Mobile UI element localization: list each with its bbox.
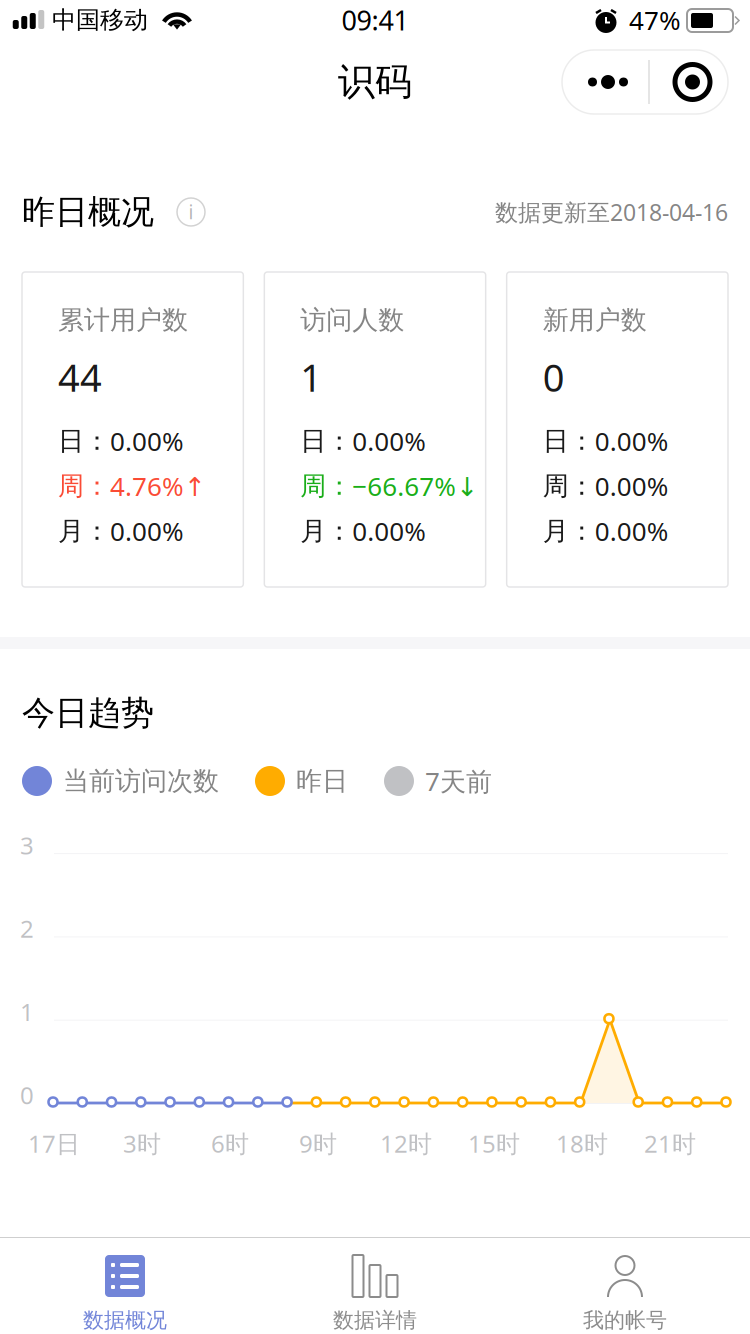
staticText: 数据概况 <box>83 1307 167 1333</box>
staticText: 3时 <box>123 1127 161 1160</box>
staticText: 7天前 <box>425 763 492 799</box>
staticText: 0 <box>20 1079 34 1111</box>
staticText: 0.00% <box>110 423 184 459</box>
staticText: 0.00% <box>595 468 669 504</box>
staticText: 0.00% <box>595 513 669 549</box>
staticText: 周： <box>543 470 595 502</box>
staticText: 9时 <box>299 1127 337 1160</box>
staticText: 月： <box>543 515 595 547</box>
staticText: 0.00% <box>110 513 184 549</box>
staticText: 09:41 <box>341 2 408 38</box>
staticText: 新用户数 <box>543 304 647 336</box>
staticText: 12时 <box>380 1127 432 1160</box>
staticText: 4.76%↑ <box>110 468 206 504</box>
staticText: 15时 <box>468 1127 520 1160</box>
staticText: 日： <box>300 425 352 457</box>
staticText: 1 <box>20 995 34 1028</box>
staticText: 0.00% <box>352 423 426 459</box>
staticText: 18时 <box>556 1127 608 1160</box>
staticText: 识码 <box>338 59 412 105</box>
staticText: 累计用户数 <box>58 304 188 336</box>
staticText: 数据更新至2018-04-16 <box>495 196 728 228</box>
staticText: 17日 <box>28 1127 80 1160</box>
staticText: 周： <box>300 470 352 502</box>
staticText: 日： <box>543 425 595 457</box>
staticText: 访问人数 <box>300 304 404 336</box>
button[interactable]: 说明 <box>165 186 217 238</box>
staticText: 21时 <box>644 1127 696 1160</box>
button[interactable]: 更多 <box>562 50 728 114</box>
staticText: 昨日 <box>296 765 348 797</box>
staticText: 周： <box>58 470 110 502</box>
staticText: 3 <box>20 829 34 861</box>
staticText: 日： <box>58 425 110 457</box>
staticText: 数据详情 <box>333 1307 417 1333</box>
staticText: 1 <box>300 351 322 403</box>
staticText: 44 <box>58 351 102 403</box>
staticText: 当前访问次数 <box>63 765 219 797</box>
button[interactable]: 我的帐号 <box>500 1238 750 1334</box>
staticText: 今日趋势 <box>22 692 154 734</box>
staticText: 2 <box>20 912 34 945</box>
staticText: 中国移动 <box>52 5 148 35</box>
staticText: 0 <box>543 351 565 403</box>
staticText: 6时 <box>211 1127 249 1160</box>
staticText: i <box>188 199 193 225</box>
staticText: 47% <box>629 2 681 38</box>
staticText: 0.00% <box>352 513 426 549</box>
staticText: 月： <box>58 515 110 547</box>
staticText: 昨日概况 <box>22 191 154 233</box>
button[interactable]: 数据概况 <box>0 1238 250 1334</box>
staticText: 我的帐号 <box>583 1307 667 1333</box>
staticText: 月： <box>300 515 352 547</box>
staticText: 0.00% <box>595 423 669 459</box>
button[interactable]: 数据详情 <box>250 1238 500 1334</box>
staticText: −66.67%↓ <box>352 468 478 504</box>
